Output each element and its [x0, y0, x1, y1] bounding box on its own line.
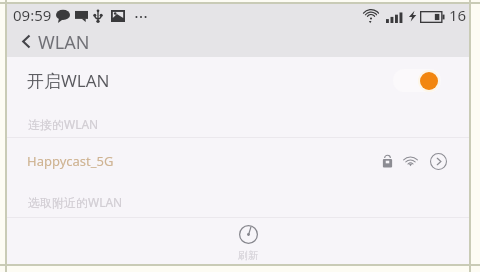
other: Refresh	[239, 225, 258, 244]
staticText: Happycast_5G	[27, 152, 114, 170]
button[interactable]: Refresh	[220, 225, 276, 262]
staticText: 连接的WLAN	[28, 116, 99, 132]
staticText: 选取附近的WLAN	[28, 194, 123, 210]
staticText: WLAN	[38, 30, 90, 52]
button[interactable]: Happycast_5G	[7, 142, 469, 180]
staticText: 16	[449, 5, 467, 25]
staticText: 开启WLAN	[27, 69, 110, 92]
other: Back	[21, 34, 31, 49]
button[interactable]: Back	[7, 30, 469, 52]
staticText: 刷新	[238, 249, 258, 262]
staticText: 09:59	[13, 5, 52, 25]
button[interactable]: 开启WLAN	[7, 58, 469, 102]
